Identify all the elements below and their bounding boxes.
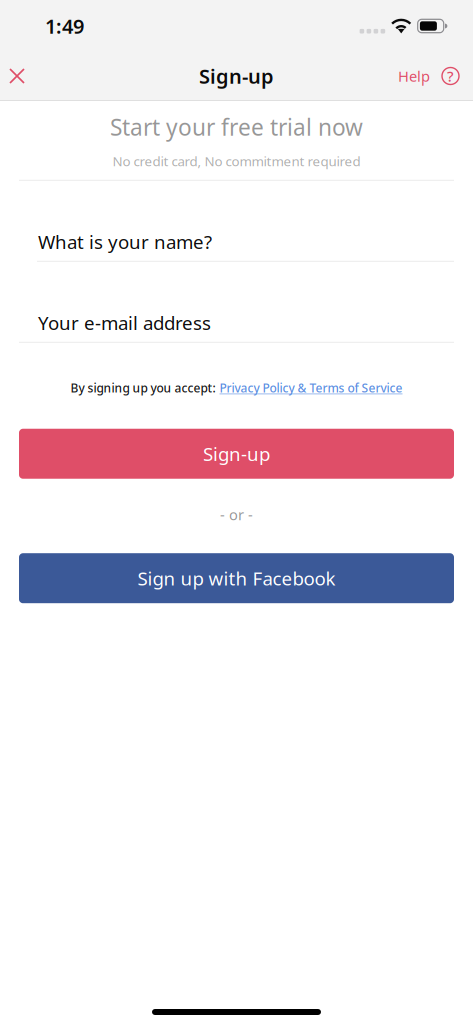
staticText: What is your name?: [38, 229, 212, 254]
staticText: By signing up you accept:: [70, 380, 215, 396]
button[interactable]: Privacy Policy & Terms of Service: [219, 380, 402, 396]
button[interactable]: Help: [388, 52, 473, 100]
staticText: Sign up with Facebook: [137, 566, 335, 591]
staticText: - or -: [220, 505, 253, 524]
button[interactable]: What is your name?: [0, 181, 473, 261]
staticText: Privacy Policy & Terms of Service: [219, 380, 402, 396]
button[interactable]: Your e-mail address: [0, 262, 473, 342]
staticText: No credit card, No commitment required: [112, 152, 360, 170]
staticText: Sign-up: [199, 63, 274, 89]
staticText: Help: [398, 66, 430, 86]
staticText: Start your free trial now: [110, 112, 363, 142]
staticText: ?: [447, 66, 454, 86]
button[interactable]: Sign-up: [0, 429, 473, 479]
staticText: Your e-mail address: [38, 310, 211, 335]
button[interactable]: Close: [0, 52, 34, 100]
staticText: Sign-up: [203, 441, 270, 466]
button[interactable]: Sign up with Facebook: [0, 553, 473, 603]
staticText: 1:49: [45, 13, 84, 39]
